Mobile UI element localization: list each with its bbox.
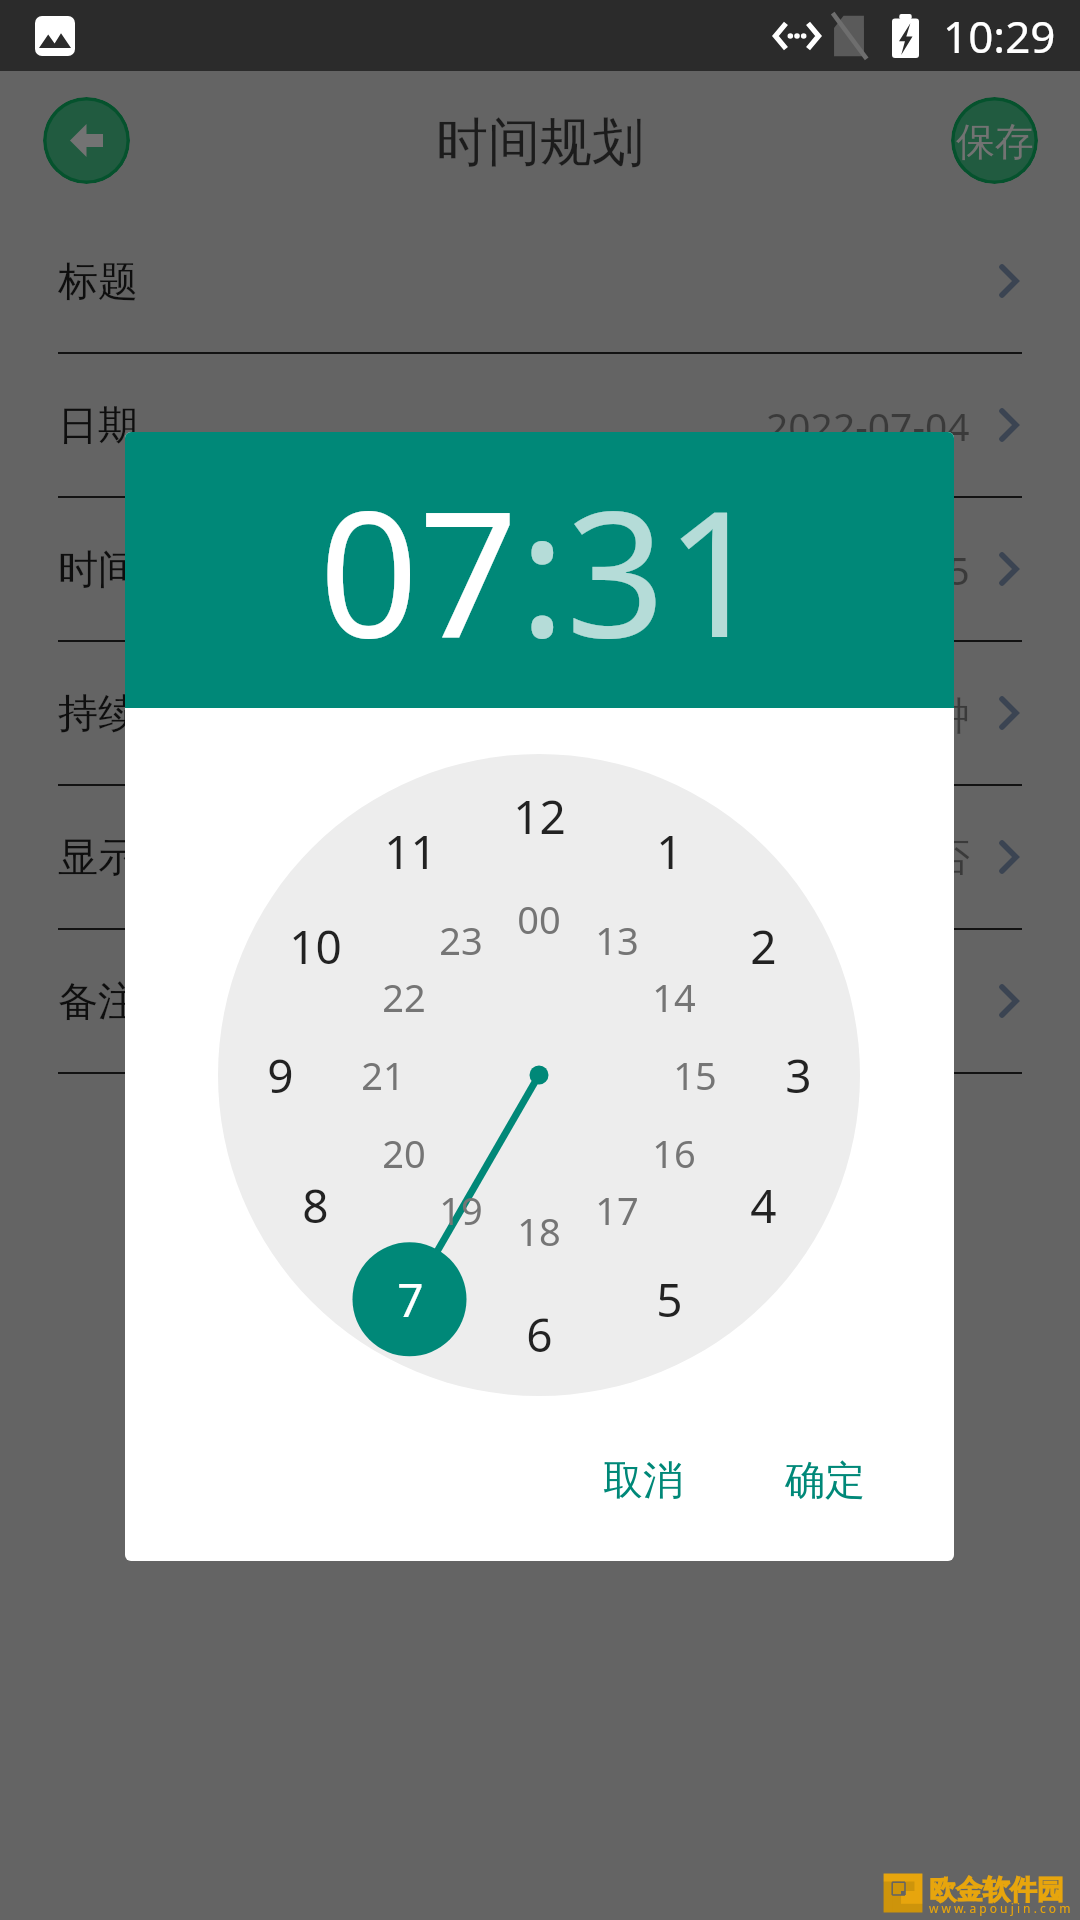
button[interactable]: 16 <box>618 1097 730 1209</box>
button[interactable]: 6 <box>483 1278 595 1390</box>
button[interactable]: 3 <box>742 1019 854 1131</box>
staticText: 日期 <box>58 400 138 450</box>
staticText: 13 <box>595 914 639 966</box>
staticText: 30分钟 <box>847 687 970 740</box>
staticText: 18 <box>517 1205 561 1257</box>
staticText: 10 <box>289 915 342 978</box>
button[interactable]: 11 <box>354 795 466 907</box>
staticText: 3 <box>785 1044 812 1107</box>
button[interactable]: 21 <box>327 1019 439 1131</box>
button[interactable]: 12 <box>483 760 595 872</box>
button[interactable]: 保存 <box>951 97 1038 184</box>
staticText: 时间规划 <box>436 110 644 176</box>
staticText: 16 <box>652 1127 696 1179</box>
staticText: 2022-07-04 <box>766 399 970 452</box>
button[interactable]: 备注 <box>0 930 1080 1074</box>
staticText: 7 <box>397 1268 424 1331</box>
button[interactable]: 持续 <box>0 642 1080 786</box>
button[interactable]: 显示 <box>0 786 1080 930</box>
button[interactable]: 23 <box>405 884 517 996</box>
staticText: 20 <box>382 1127 426 1179</box>
staticText: 21 <box>361 1049 405 1101</box>
button[interactable]: 20 <box>348 1097 460 1209</box>
staticText: 时间 <box>58 544 138 594</box>
button[interactable]: 15 <box>639 1019 751 1131</box>
button[interactable]: 07 <box>319 451 519 688</box>
staticText: 12 <box>513 785 566 848</box>
staticText: 07 <box>319 451 519 688</box>
staticText: 11 <box>384 820 437 883</box>
button[interactable]: 1 <box>613 795 725 907</box>
staticText: 标题 <box>58 256 138 306</box>
button[interactable]: 确定 <box>760 1438 890 1522</box>
staticText: :31 <box>519 451 765 688</box>
staticText: 否 <box>931 833 970 882</box>
button[interactable]: 8 <box>259 1149 371 1261</box>
button[interactable]: 5 <box>613 1243 725 1355</box>
staticText: 欧金软件园 <box>929 1873 1064 1907</box>
staticText: 5 <box>656 1268 683 1331</box>
staticText: 17 <box>595 1184 639 1236</box>
staticText: w w w. a p o u j i n . c o m <box>929 1900 1071 1916</box>
staticText: 00 <box>517 893 561 945</box>
staticText: 22 <box>382 971 426 1023</box>
staticText: 备注 <box>58 976 138 1026</box>
staticText: 保存 <box>956 117 1034 166</box>
button[interactable]: 22 <box>348 941 460 1053</box>
staticText: 1 <box>656 820 683 883</box>
button[interactable]: 日期 <box>0 354 1080 498</box>
button[interactable]: 2 <box>707 890 819 1002</box>
button[interactable]: 取消 <box>578 1438 708 1522</box>
staticText: 14 <box>652 971 696 1023</box>
button[interactable]: 14 <box>618 941 730 1053</box>
staticText: 6 <box>526 1303 553 1366</box>
button[interactable]: 00 <box>483 863 595 975</box>
button[interactable]: 4 <box>707 1149 819 1261</box>
staticText: 15 <box>673 1049 717 1101</box>
button[interactable]: Back <box>43 97 130 184</box>
button[interactable]: 7 <box>354 1243 466 1355</box>
staticText: 持续 <box>58 688 138 738</box>
button[interactable]: 17 <box>561 1154 673 1266</box>
button[interactable]: 13 <box>561 884 673 996</box>
staticText: 4 <box>750 1174 777 1237</box>
staticText: 取消 <box>603 1455 683 1505</box>
button[interactable]: :31 <box>519 451 765 688</box>
staticText: 9 <box>267 1044 294 1107</box>
staticText: 10:29 <box>943 6 1056 66</box>
staticText: 显示 <box>58 832 138 882</box>
button[interactable]: 9 <box>224 1019 336 1131</box>
button[interactable]: 时间 <box>0 498 1080 642</box>
staticText: 23 <box>439 914 483 966</box>
staticText: 07:35 <box>870 543 970 596</box>
staticText: 19 <box>439 1184 483 1236</box>
button[interactable]: 标题 <box>0 210 1080 354</box>
staticText: 8 <box>302 1174 329 1237</box>
staticText: 2 <box>750 915 777 978</box>
button[interactable]: 10 <box>259 890 371 1002</box>
staticText: 确定 <box>785 1455 865 1505</box>
button[interactable]: 19 <box>405 1154 517 1266</box>
button[interactable]: 18 <box>483 1175 595 1287</box>
